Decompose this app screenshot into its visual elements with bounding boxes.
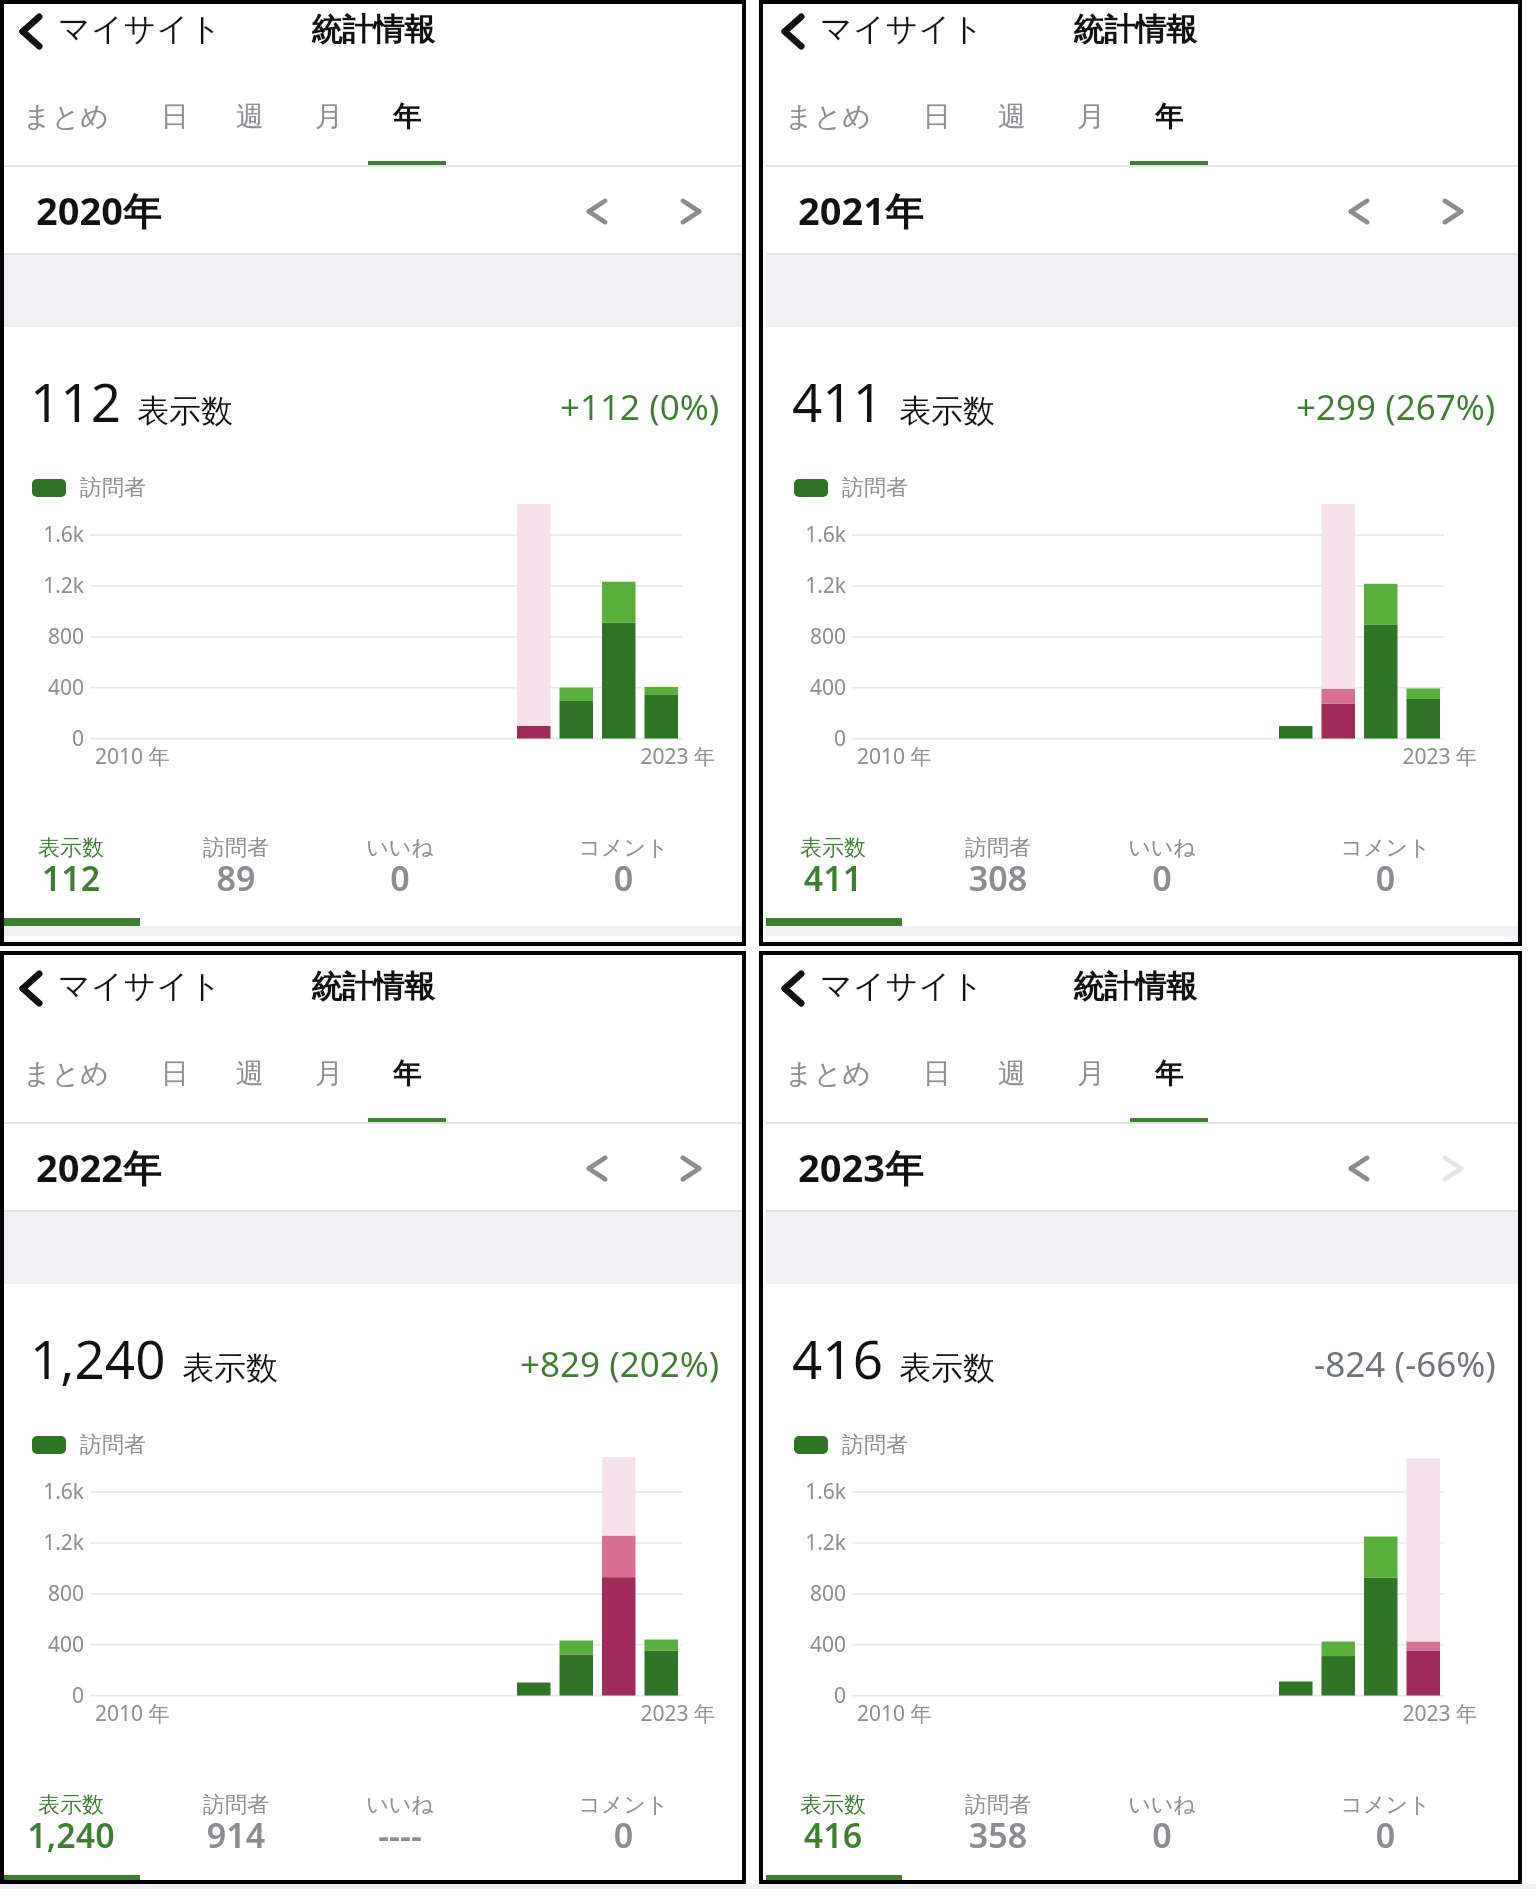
staticText: 411: [766, 855, 900, 901]
staticText: 日: [161, 1056, 189, 1091]
staticText: 400: [8, 1630, 84, 1659]
button[interactable]: 表示数: [766, 832, 900, 918]
staticText: 統計情報: [1073, 10, 1197, 49]
staticText: 0: [334, 855, 466, 901]
staticText: 年: [1155, 99, 1183, 134]
button[interactable]: コメント: [486, 832, 742, 918]
staticText: 表示数: [182, 1348, 278, 1388]
button[interactable]: 日: [136, 1041, 214, 1124]
staticText: 2010 年: [857, 1699, 932, 1728]
button[interactable]: 日: [898, 84, 976, 167]
staticText: 800: [8, 1579, 84, 1608]
staticText: +299 (267%): [1296, 383, 1496, 431]
staticText: +112 (0%): [560, 383, 720, 431]
button[interactable]: 週: [211, 84, 289, 167]
button[interactable]: 日: [898, 1041, 976, 1124]
staticText: 訪問者: [80, 474, 146, 502]
button[interactable]: コメント: [1248, 1789, 1518, 1875]
button[interactable]: コメント: [1248, 832, 1518, 918]
button[interactable]: Back: [770, 965, 816, 1011]
button[interactable]: Previous: [575, 1146, 619, 1190]
button[interactable]: Next: [669, 189, 713, 233]
staticText: まとめ: [23, 1056, 109, 1091]
button[interactable]: まとめ: [4, 1041, 128, 1124]
staticText: 1,240: [4, 1812, 138, 1858]
button[interactable]: まとめ: [766, 1041, 890, 1124]
button[interactable]: 月: [1051, 84, 1130, 167]
staticText: 表示数: [766, 1791, 900, 1819]
button[interactable]: Previous: [575, 189, 619, 233]
button[interactable]: 週: [211, 1041, 289, 1124]
button[interactable]: 週: [973, 1041, 1051, 1124]
button[interactable]: 訪問者: [900, 832, 1096, 918]
button[interactable]: 年: [368, 84, 446, 167]
button[interactable]: Back: [770, 8, 816, 54]
button[interactable]: 年: [368, 1041, 446, 1124]
staticText: 358: [900, 1812, 1096, 1858]
staticText: コメント: [486, 1791, 742, 1819]
button[interactable]: 訪問者: [900, 1789, 1096, 1875]
staticText: 0: [8, 1681, 84, 1710]
button[interactable]: 表示数: [4, 832, 138, 918]
staticText: 1.2k: [770, 1528, 846, 1557]
staticText: 2023 年: [1337, 742, 1477, 771]
staticText: 800: [770, 622, 846, 651]
staticText: 統計情報: [311, 10, 435, 49]
staticText: 1,240: [30, 1322, 166, 1394]
button[interactable]: 週: [973, 84, 1051, 167]
staticText: 400: [770, 1630, 846, 1659]
button[interactable]: 月: [1051, 1041, 1130, 1124]
button[interactable]: Previous: [1337, 189, 1381, 233]
staticText: 月: [1077, 99, 1105, 134]
staticText: +829 (202%): [520, 1340, 720, 1388]
staticText: 週: [998, 99, 1026, 134]
staticText: 800: [770, 1579, 846, 1608]
button[interactable]: Next: [1431, 1146, 1475, 1190]
button[interactable]: いいね: [334, 832, 466, 918]
staticText: 416: [766, 1812, 900, 1858]
staticText: 308: [900, 855, 1096, 901]
button[interactable]: Next: [669, 1146, 713, 1190]
staticText: 112: [30, 365, 121, 437]
staticText: 416: [792, 1322, 883, 1394]
staticText: 0: [1248, 855, 1518, 901]
button[interactable]: コメント: [486, 1789, 742, 1875]
staticText: 1.6k: [770, 520, 846, 549]
staticText: 訪問者: [900, 1791, 1096, 1819]
staticText: 2010 年: [95, 1699, 170, 1728]
staticText: 1.2k: [770, 571, 846, 600]
button[interactable]: 年: [1130, 1041, 1208, 1124]
button[interactable]: いいね: [334, 1789, 466, 1875]
staticText: 0: [1248, 1812, 1518, 1858]
button[interactable]: いいね: [1096, 1789, 1228, 1875]
button[interactable]: Back: [8, 8, 54, 54]
staticText: 表示数: [766, 834, 900, 862]
button[interactable]: 表示数: [4, 1789, 138, 1875]
button[interactable]: 日: [136, 84, 214, 167]
staticText: コメント: [1248, 834, 1518, 862]
button[interactable]: いいね: [1096, 832, 1228, 918]
staticText: 表示数: [899, 1348, 995, 1388]
button[interactable]: Previous: [1337, 1146, 1381, 1190]
staticText: まとめ: [785, 1056, 871, 1091]
staticText: 統計情報: [1073, 967, 1197, 1006]
button[interactable]: 表示数: [766, 1789, 900, 1875]
button[interactable]: Back: [8, 965, 54, 1011]
button[interactable]: 訪問者: [138, 1789, 334, 1875]
button[interactable]: まとめ: [766, 84, 890, 167]
button[interactable]: 年: [1130, 84, 1208, 167]
button[interactable]: 月: [289, 1041, 368, 1124]
staticText: 800: [8, 622, 84, 651]
button[interactable]: まとめ: [4, 84, 128, 167]
staticText: コメント: [486, 834, 742, 862]
staticText: 1.6k: [8, 520, 84, 549]
staticText: 2010 年: [95, 742, 170, 771]
staticText: 日: [923, 1056, 951, 1091]
staticText: 914: [138, 1812, 334, 1858]
button[interactable]: 訪問者: [138, 832, 334, 918]
button[interactable]: Next: [1431, 189, 1475, 233]
staticText: 0: [8, 724, 84, 753]
staticText: いいね: [1096, 1791, 1228, 1819]
button[interactable]: 月: [289, 84, 368, 167]
staticText: 2021年: [798, 184, 923, 236]
